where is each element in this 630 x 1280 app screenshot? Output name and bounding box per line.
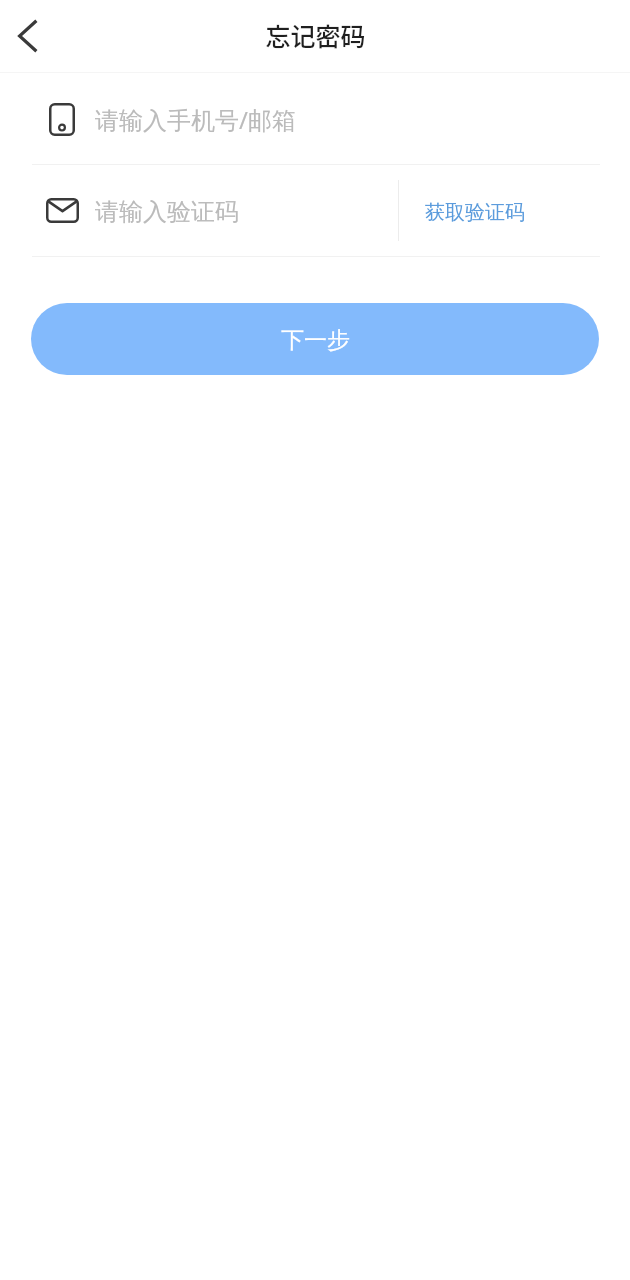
staticText: 请输入手机号/邮箱 bbox=[95, 103, 296, 136]
button[interactable]: Back bbox=[0, 0, 62, 72]
button[interactable]: 下一步 bbox=[31, 303, 599, 375]
staticText: 获取验证码 bbox=[425, 200, 525, 225]
staticText: 忘记密码 bbox=[265, 17, 366, 53]
button[interactable]: 请输入手机号/邮箱 bbox=[0, 73, 630, 164]
button[interactable]: 获取验证码 bbox=[399, 165, 551, 256]
button[interactable]: 请输入验证码 bbox=[0, 165, 398, 256]
staticText: 请输入验证码 bbox=[95, 197, 239, 227]
staticText: 下一步 bbox=[281, 326, 350, 355]
